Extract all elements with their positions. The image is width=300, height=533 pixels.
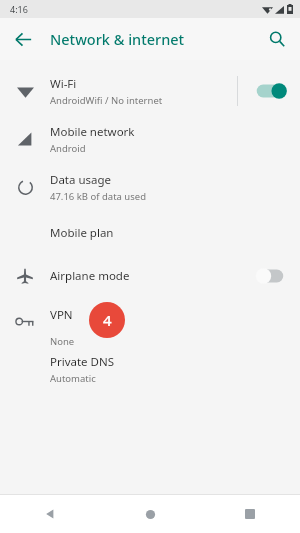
staticText: Automatic bbox=[50, 372, 96, 385]
staticText: Network & internet bbox=[50, 29, 185, 49]
button[interactable]: Airplane mode bbox=[0, 254, 300, 297]
button[interactable]: Mobile plan bbox=[0, 211, 300, 254]
staticText: AndroidWifi / No internet bbox=[50, 94, 163, 107]
button[interactable]: Switch off bbox=[254, 265, 288, 287]
staticText: Mobile network bbox=[50, 124, 135, 140]
button[interactable]: Recent apps bbox=[200, 495, 300, 533]
button[interactable]: Mobile network bbox=[0, 115, 300, 163]
staticText: Airplane mode bbox=[50, 268, 130, 284]
button[interactable]: Back bbox=[8, 24, 38, 54]
button[interactable]: Search bbox=[262, 24, 292, 54]
button[interactable]: Data usage bbox=[0, 163, 300, 211]
button[interactable]: Back bbox=[0, 495, 100, 533]
button[interactable]: VPN bbox=[0, 297, 300, 345]
staticText: 4 bbox=[103, 310, 112, 330]
staticText: Android bbox=[50, 142, 86, 155]
staticText: VPN bbox=[50, 307, 73, 323]
button[interactable]: Private DNS bbox=[0, 345, 300, 393]
staticText: Data usage bbox=[50, 172, 112, 188]
staticText: Private DNS bbox=[50, 354, 115, 370]
staticText: Mobile plan bbox=[50, 225, 114, 241]
button[interactable]: Wi-Fi bbox=[0, 67, 300, 115]
button[interactable]: Switch on bbox=[254, 80, 288, 102]
button[interactable]: Home bbox=[100, 495, 200, 533]
staticText: Wi-Fi bbox=[50, 76, 77, 92]
staticText: 47.16 kB of data used bbox=[50, 190, 146, 203]
staticText: 4:16 bbox=[10, 3, 28, 15]
staticText: None bbox=[50, 335, 75, 345]
